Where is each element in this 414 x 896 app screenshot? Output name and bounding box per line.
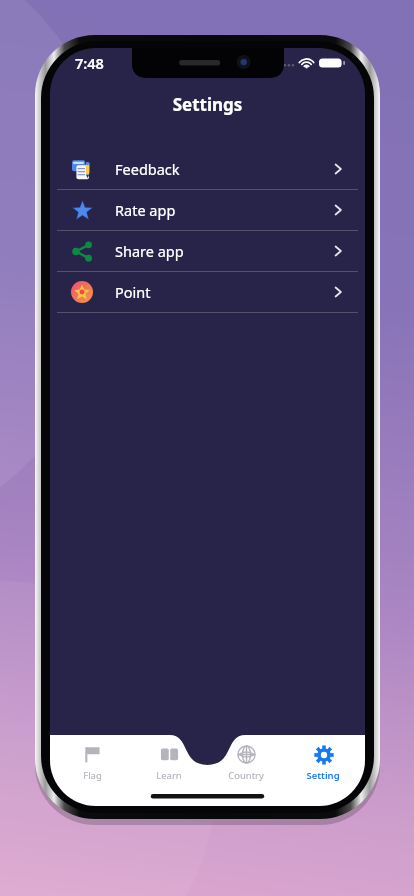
button[interactable]: Setting — [288, 742, 358, 784]
staticText: Settings — [50, 93, 365, 116]
staticText: Learn — [156, 769, 182, 782]
staticText: Country — [228, 769, 264, 782]
button[interactable]: Feedback — [50, 149, 365, 189]
staticText: Share app — [115, 241, 184, 261]
button[interactable]: Rate app — [50, 190, 365, 230]
staticText: Setting — [306, 769, 340, 782]
button[interactable]: Flag — [57, 742, 127, 784]
button[interactable]: Share app — [50, 231, 365, 271]
staticText: Feedback — [115, 159, 180, 179]
staticText: Rate app — [115, 200, 176, 220]
staticText: Flag — [83, 769, 102, 782]
staticText: 7:48 — [75, 53, 104, 73]
button[interactable]: Learn — [134, 742, 204, 784]
staticText: Point — [115, 282, 151, 302]
button[interactable]: Country — [211, 742, 281, 784]
button[interactable]: Point — [50, 272, 365, 312]
